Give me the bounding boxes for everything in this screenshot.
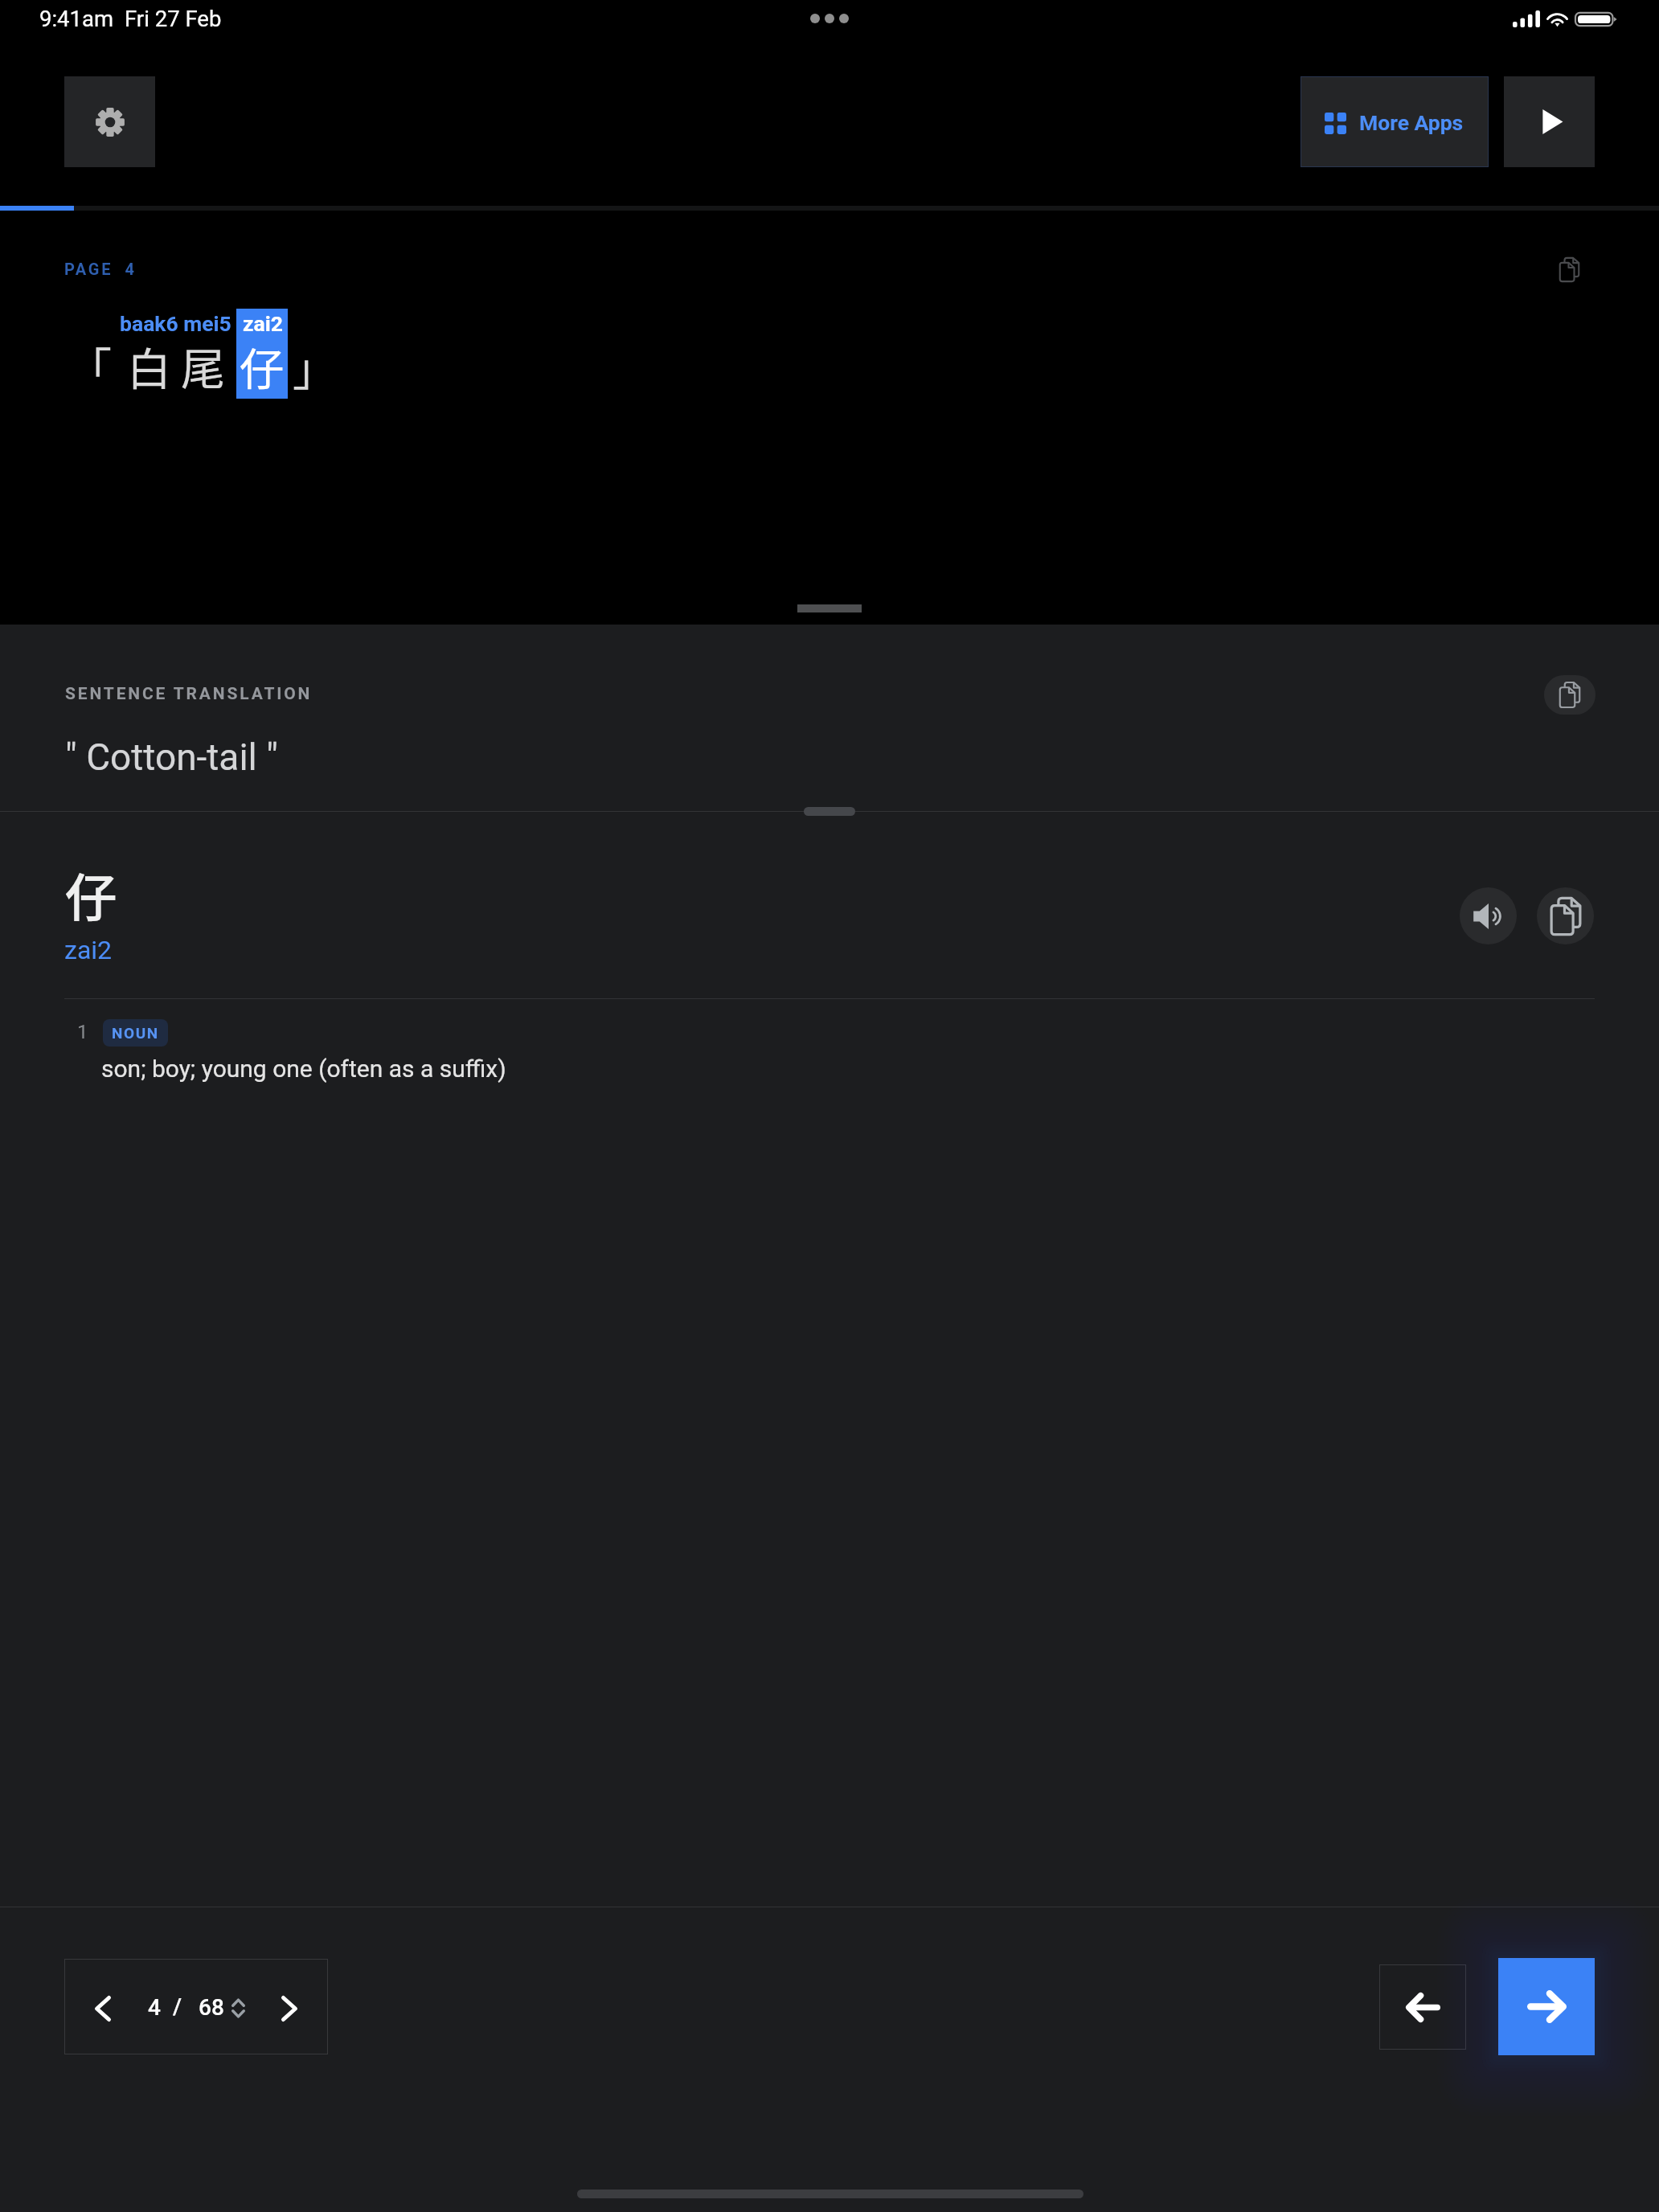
button[interactable]: Copy word: [1537, 887, 1594, 944]
staticText: 「: [68, 334, 113, 398]
button[interactable]: Copy sentence: [1545, 243, 1593, 296]
staticText: 」: [293, 334, 338, 398]
staticText: SENTENCE TRANSLATION: [65, 684, 313, 704]
staticText: /: [173, 1993, 182, 2020]
staticText: 9:41am: [39, 6, 114, 31]
button[interactable]: Page 4 of 68: [131, 1960, 263, 2054]
staticText: " Cotton-tail ": [65, 735, 278, 779]
staticText: 仔: [240, 334, 285, 398]
staticText: NOUN: [112, 1024, 159, 1042]
staticText: 4: [148, 1994, 161, 2021]
button[interactable]: Play: [1504, 76, 1595, 167]
button[interactable]: Play audio: [1460, 887, 1517, 944]
staticText: Fri 27 Feb: [125, 6, 222, 31]
staticText: son; boy; young one (often as a suffix): [101, 1055, 506, 1083]
button[interactable]: Next page: [1498, 1958, 1595, 2055]
button[interactable]: [1301, 76, 1489, 167]
staticText: 仔: [65, 857, 117, 932]
staticText: baak6 mei5: [120, 311, 231, 336]
staticText: zai2: [64, 935, 113, 965]
staticText: 1: [77, 1021, 88, 1043]
staticText: 白: [127, 334, 172, 398]
staticText: More Apps: [1359, 110, 1464, 135]
staticText: 68: [199, 1994, 224, 2021]
staticText: PAGE 4: [64, 260, 137, 278]
button[interactable]: Next page: [263, 1960, 327, 2054]
button[interactable]: Previous page: [65, 1960, 131, 2054]
button[interactable]: Settings: [64, 76, 155, 167]
button[interactable]: Previous page: [1379, 1964, 1466, 2050]
staticText: 尾: [181, 334, 226, 398]
staticText: zai2: [243, 311, 283, 336]
button[interactable]: Copy translation: [1544, 675, 1596, 715]
